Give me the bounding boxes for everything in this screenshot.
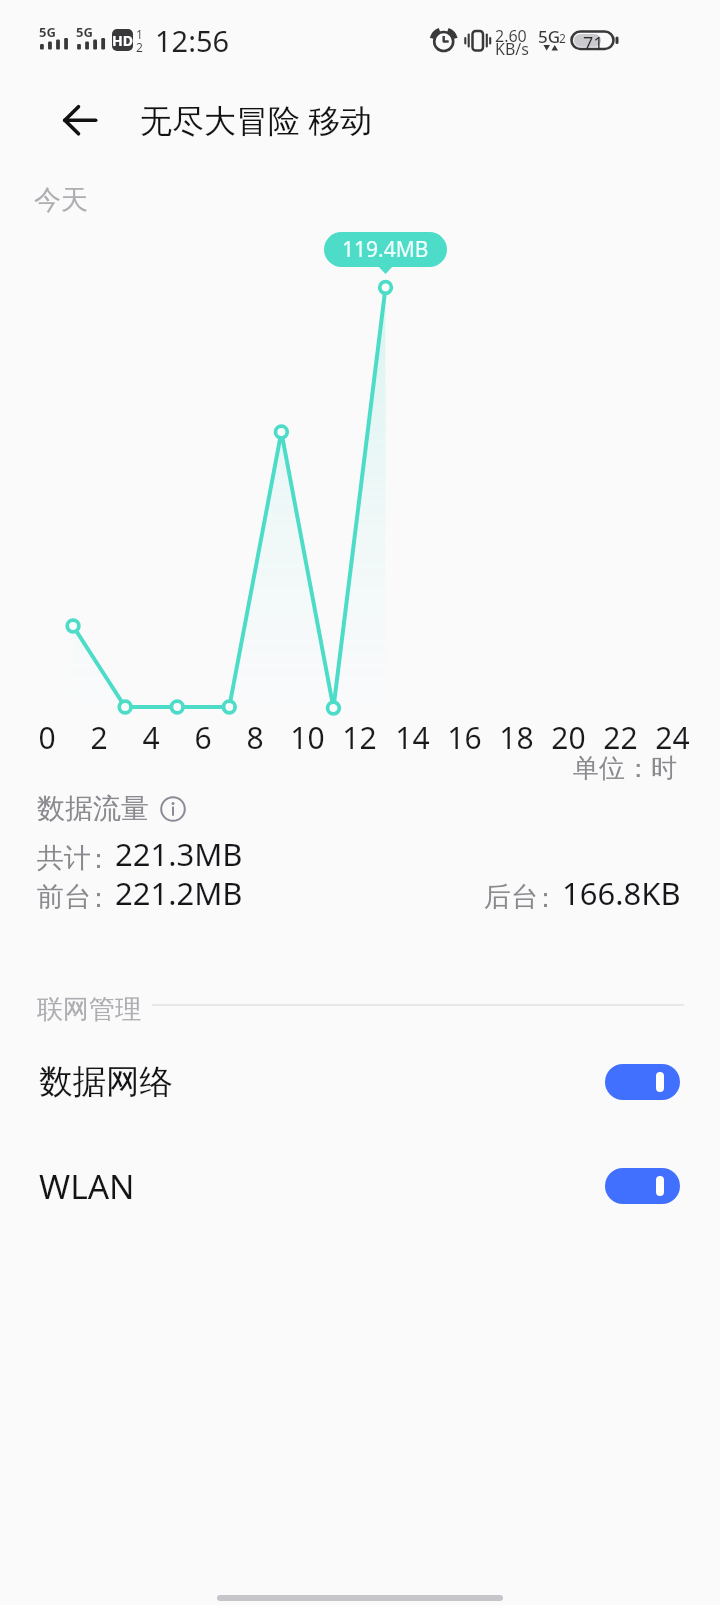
staticText: 1 bbox=[136, 26, 143, 42]
staticText: 119.4MB bbox=[342, 235, 429, 264]
staticText: 24 bbox=[655, 717, 690, 758]
staticText: 后台 bbox=[484, 880, 538, 914]
staticText: 20 bbox=[551, 717, 586, 758]
staticText: 221.2MB bbox=[115, 872, 243, 914]
staticText: 无尽大冒险 移动 bbox=[140, 98, 373, 142]
staticText: 0 bbox=[38, 717, 56, 758]
staticText: 5G bbox=[538, 25, 561, 48]
staticText: 2 bbox=[559, 30, 566, 46]
staticText: 221.3MB bbox=[115, 833, 243, 875]
staticText: 22 bbox=[603, 717, 638, 758]
staticText: 前台 bbox=[37, 880, 91, 914]
staticText: 18 bbox=[499, 717, 534, 758]
staticText: 联网管理 bbox=[37, 993, 141, 1026]
staticText: HD bbox=[112, 31, 133, 50]
staticText: 166.8KB bbox=[562, 872, 681, 914]
staticText: ： bbox=[532, 881, 556, 914]
staticText: 14 bbox=[395, 717, 430, 758]
staticText: 5G bbox=[76, 23, 93, 41]
staticText: 数据网络 bbox=[39, 1061, 173, 1103]
staticText: 2.60 bbox=[495, 25, 527, 47]
staticText: 单位：时 bbox=[573, 752, 677, 785]
staticText: 2 bbox=[136, 39, 143, 55]
staticText: 2 bbox=[90, 717, 108, 758]
button[interactable]: WLAN bbox=[0, 1136, 720, 1236]
staticText: 数据流量 bbox=[37, 791, 149, 826]
button[interactable]: Back bbox=[46, 94, 98, 146]
staticText: 12:56 bbox=[155, 21, 230, 60]
staticText: 71 bbox=[583, 31, 604, 49]
staticText: 4 bbox=[142, 717, 160, 758]
staticText: 共计 bbox=[37, 841, 91, 875]
staticText: ： bbox=[85, 842, 109, 875]
staticText: 12 bbox=[342, 717, 377, 758]
staticText: KB/s bbox=[495, 38, 529, 60]
staticText: 10 bbox=[290, 717, 325, 758]
staticText: WLAN bbox=[39, 1163, 135, 1209]
staticText: 8 bbox=[246, 717, 264, 758]
staticText: 今天 bbox=[34, 183, 88, 217]
staticText: 5G bbox=[39, 23, 56, 41]
staticText: 16 bbox=[447, 717, 482, 758]
button[interactable]: 数据网络 bbox=[0, 1032, 720, 1132]
staticText: ： bbox=[85, 881, 109, 914]
staticText: 6 bbox=[194, 717, 212, 758]
